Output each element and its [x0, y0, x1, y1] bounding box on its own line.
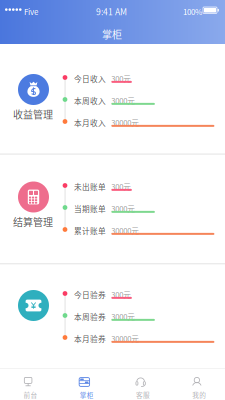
- staticText: 本周验券: [74, 311, 106, 322]
- staticText: 本月收入: [74, 117, 106, 128]
- staticText: 收益管理: [13, 107, 53, 121]
- staticText: 本月验券: [74, 333, 106, 344]
- staticText: 300元: [111, 73, 131, 84]
- staticText: 30000元: [111, 333, 139, 344]
- staticText: 未出账单: [74, 181, 106, 192]
- staticText: 结算管理: [13, 214, 53, 229]
- staticText: 掌柜: [80, 390, 94, 400]
- staticText: 300元: [111, 181, 131, 192]
- staticText: Five: [24, 6, 38, 17]
- staticText: 30000元: [111, 225, 139, 236]
- staticText: 前台: [23, 390, 37, 400]
- staticText: 今日验券: [74, 289, 106, 300]
- staticText: 本周收入: [74, 95, 106, 106]
- staticText: 3000元: [111, 203, 135, 214]
- staticText: 30000元: [111, 117, 139, 128]
- staticText: 掌柜: [102, 27, 122, 41]
- staticText: 300元: [111, 289, 131, 300]
- button[interactable]: 客服: [112, 369, 169, 400]
- button[interactable]: 前台: [0, 369, 56, 400]
- button[interactable]: 掌柜: [56, 369, 112, 400]
- staticText: 当期账单: [74, 203, 106, 214]
- staticText: 累计账单: [74, 225, 106, 236]
- staticText: 9:41 AM: [96, 5, 127, 18]
- staticText: 我的: [192, 390, 206, 400]
- staticText: 客服: [136, 390, 150, 400]
- button[interactable]: 我的: [169, 369, 225, 400]
- staticText: 100%: [183, 6, 202, 17]
- staticText: 3000元: [111, 311, 135, 322]
- staticText: 3000元: [111, 95, 135, 106]
- staticText: 今日收入: [74, 73, 106, 84]
